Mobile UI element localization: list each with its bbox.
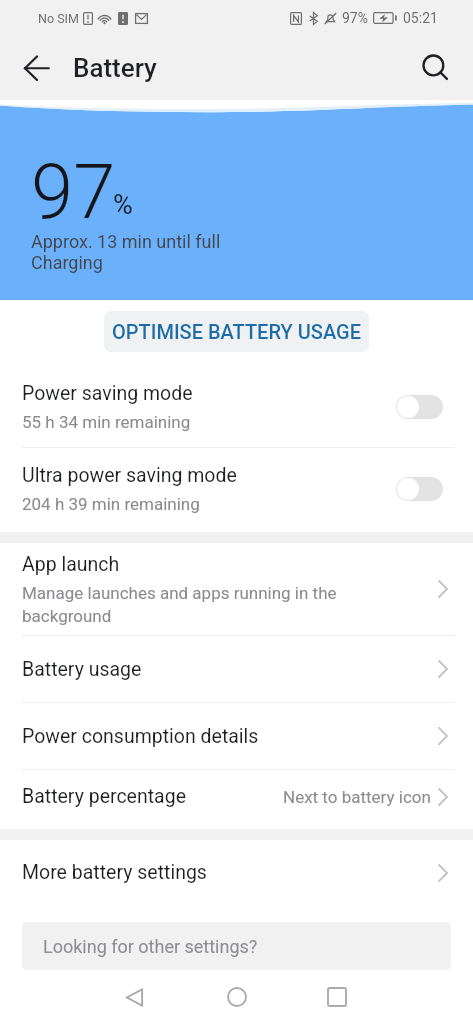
button[interactable]: Home [209,970,265,1024]
button[interactable]: App launch [0,543,473,635]
staticText: App launch [22,553,120,576]
button[interactable]: Ultra power saving mode [0,448,473,529]
staticText: Battery percentage [22,785,187,808]
staticText: No SIM [38,11,79,26]
button[interactable]: Recents [309,970,365,1024]
button[interactable]: Power consumption details [0,703,473,769]
button[interactable]: Power saving mode [0,366,473,447]
button[interactable]: More battery settings [0,840,473,905]
staticText: 55 h 34 min remaining [22,412,191,432]
button[interactable]: Back [4,36,68,100]
staticText: Battery usage [22,658,142,681]
button[interactable]: OPTIMISE BATTERY USAGE [104,311,369,352]
staticText: Next to battery icon [283,787,431,807]
button[interactable]: Looking for other settings? [22,922,451,970]
button[interactable]: Battery usage [0,636,473,702]
staticText: OPTIMISE BATTERY USAGE [112,320,361,343]
staticText: Looking for other settings? [43,936,258,957]
staticText: 204 h 39 min remaining [22,494,200,514]
button[interactable]: Search [404,36,468,100]
staticText: Battery [73,53,157,83]
button[interactable]: Battery percentage [0,770,473,823]
staticText: % [113,189,133,221]
staticText: Approx. 13 min until full Charging [31,231,221,274]
button[interactable]: Back [106,970,162,1024]
staticText: 05:21 [403,10,438,26]
staticText: Power consumption details [22,725,259,748]
staticText: Manage launches and apps running in the … [22,583,337,626]
staticText: More battery settings [22,861,207,884]
staticText: Power saving mode [22,382,193,405]
staticText: 97% [342,10,368,26]
staticText: Ultra power saving mode [22,464,237,487]
staticText: 97 [31,147,116,236]
